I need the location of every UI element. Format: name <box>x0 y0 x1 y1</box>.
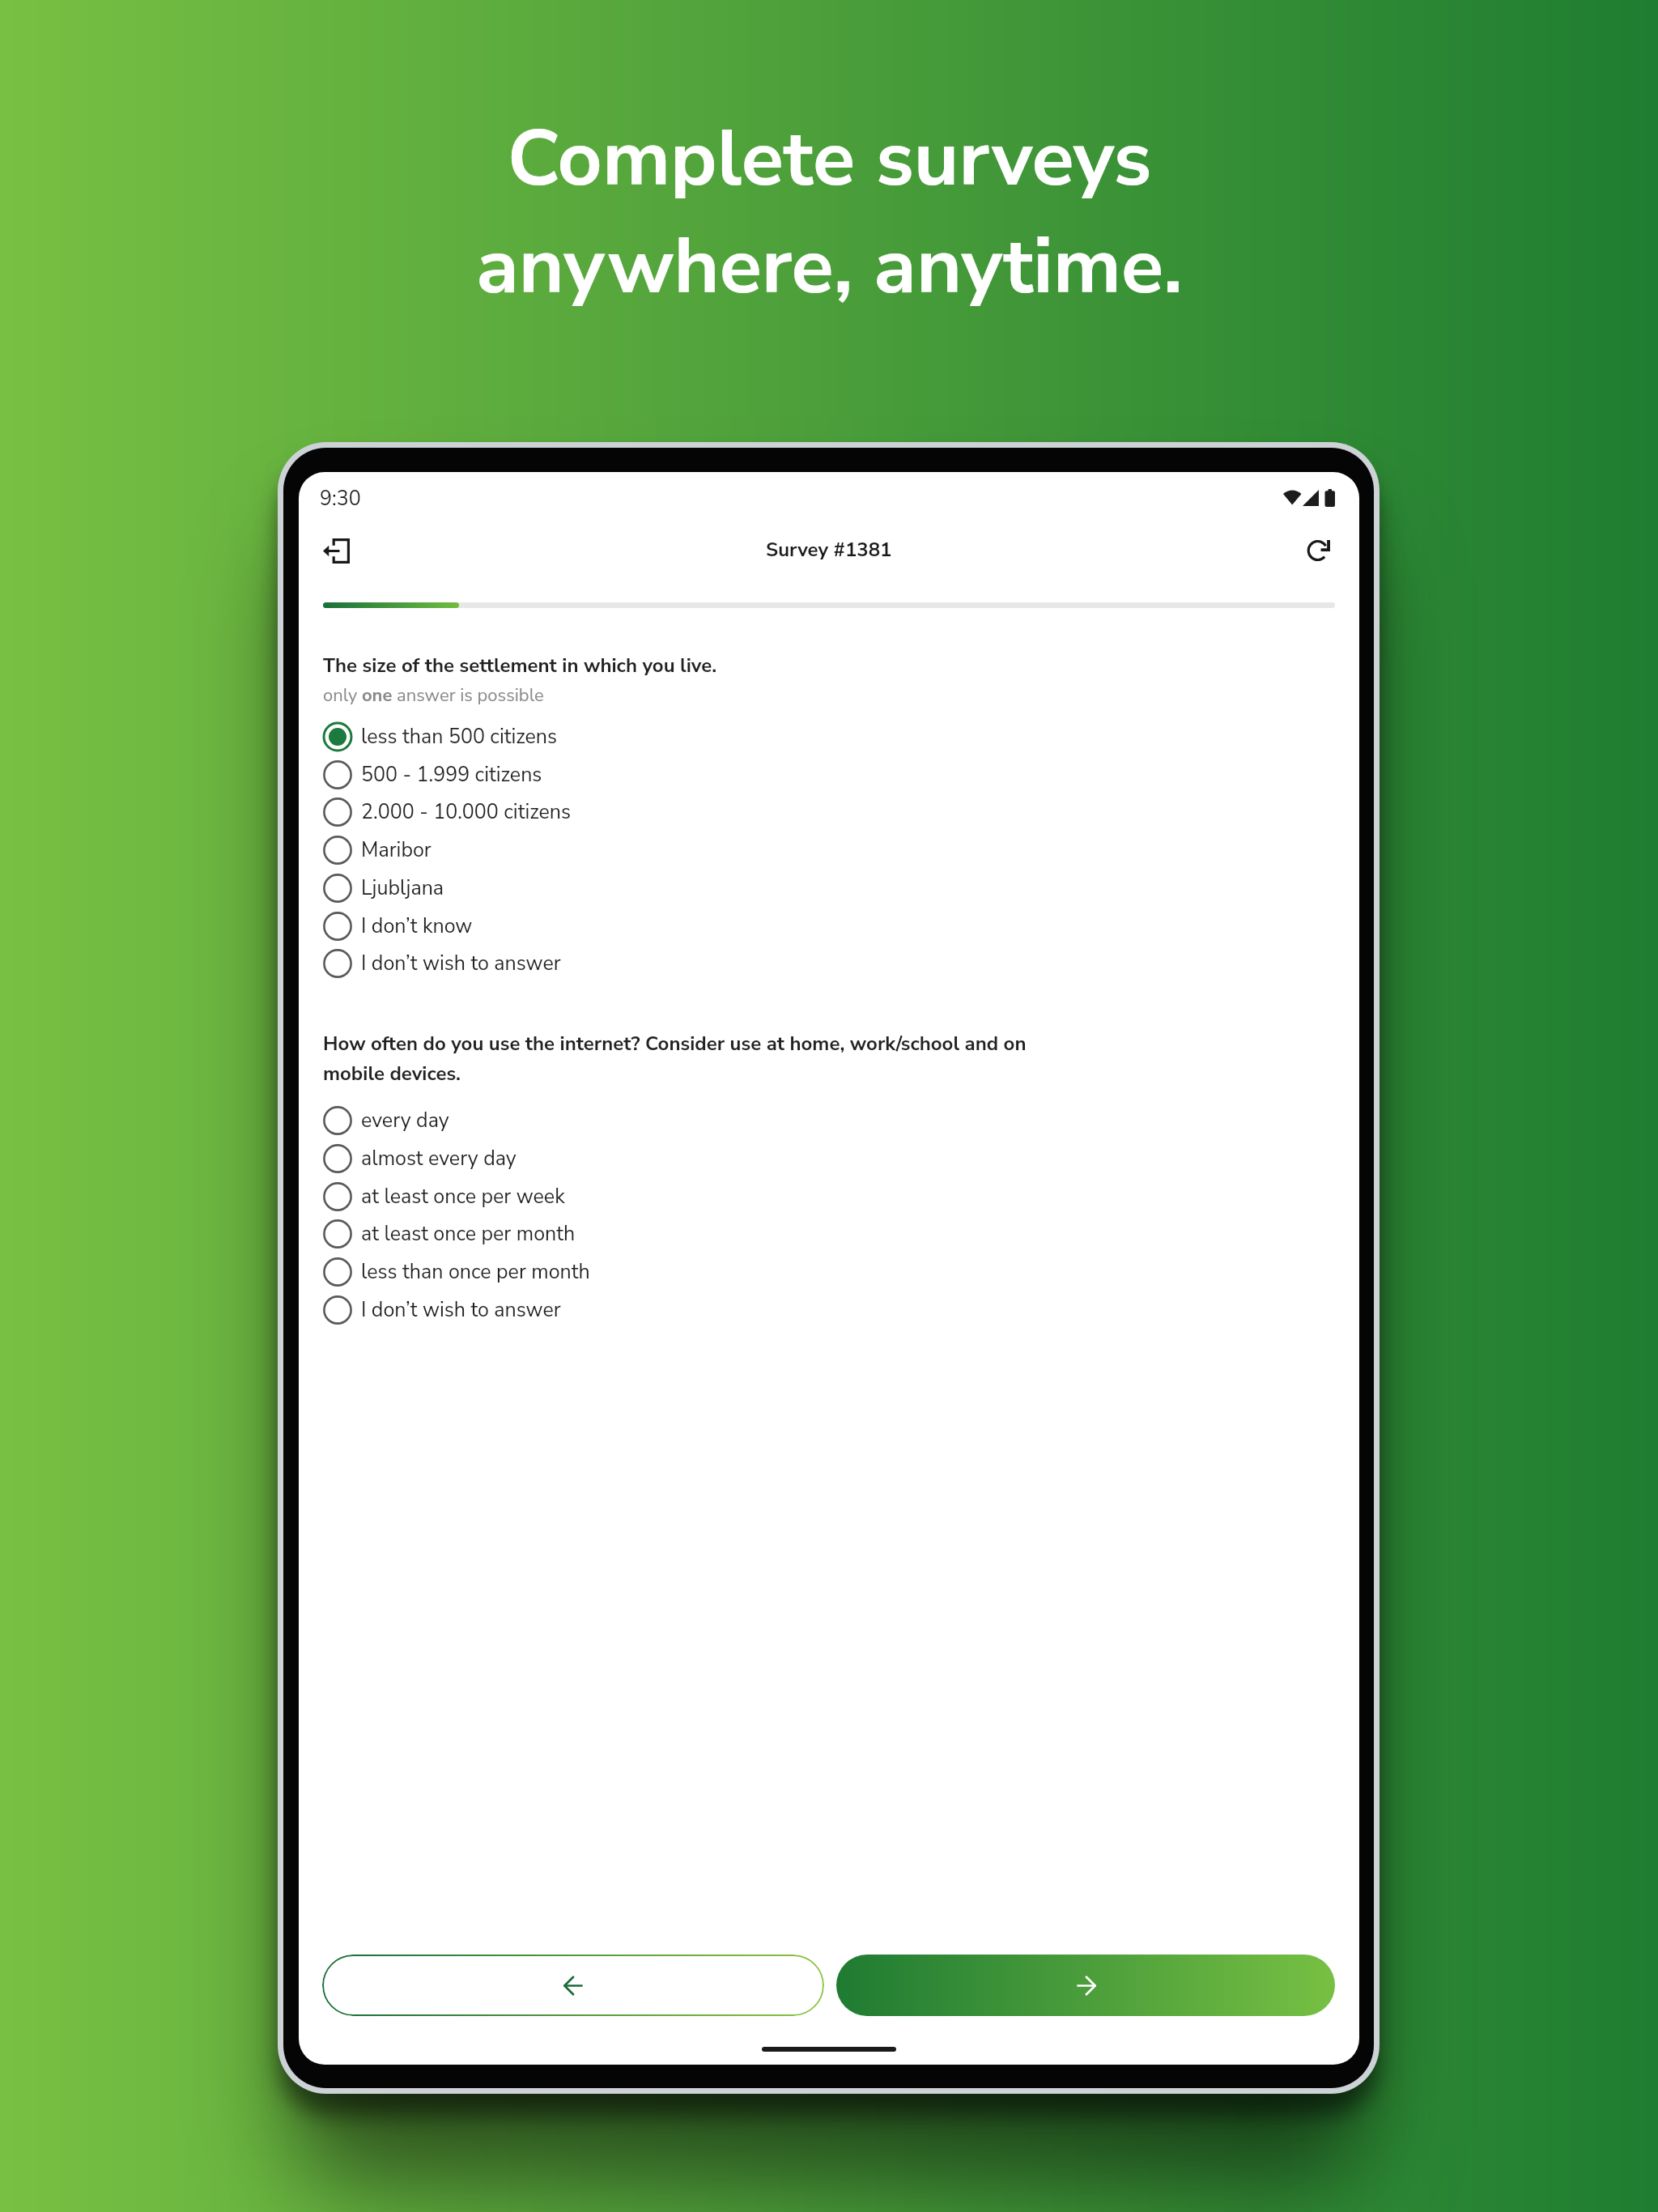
button[interactable]: Maribor <box>323 833 890 867</box>
button[interactable]: Exit survey <box>312 526 360 575</box>
button[interactable]: 500 - 1.999 citizens <box>323 758 890 792</box>
button[interactable]: 2.000 - 10.000 citizens <box>323 795 890 829</box>
button[interactable]: at least once per month <box>323 1217 890 1251</box>
staticText: only one answer is possible <box>323 683 544 708</box>
staticText: 500 - 1.999 citizens <box>361 761 542 789</box>
staticText: I don’t wish to answer <box>361 1296 561 1324</box>
button[interactable]: I don’t know <box>323 909 890 943</box>
button[interactable]: Previous question <box>322 1955 824 2016</box>
staticText: less than 500 citizens <box>361 723 558 751</box>
staticText: I don’t know <box>361 912 473 940</box>
staticText: at least once per week <box>361 1183 565 1210</box>
staticText: I don’t wish to answer <box>361 950 561 977</box>
button[interactable]: Ljubljana <box>323 871 890 905</box>
button[interactable]: less than once per month <box>323 1255 890 1289</box>
staticText: Survey #1381 <box>766 537 892 564</box>
staticText: Maribor <box>361 836 432 864</box>
staticText: almost every day <box>361 1145 517 1172</box>
button[interactable]: every day <box>323 1104 890 1138</box>
staticText: 9:30 <box>320 485 361 513</box>
staticText: The size of the settlement in which you … <box>323 653 717 679</box>
button[interactable]: I don’t wish to answer <box>323 946 890 981</box>
button[interactable]: Next question <box>836 1955 1335 2016</box>
staticText: less than once per month <box>361 1258 590 1286</box>
button[interactable]: at least once per week <box>323 1180 890 1214</box>
button[interactable]: I don’t wish to answer <box>323 1293 890 1327</box>
staticText: Ljubljana <box>361 874 444 902</box>
staticText: How often do you use the internet? Consi… <box>323 1031 1044 1087</box>
staticText: every day <box>361 1107 449 1134</box>
staticText: at least once per month <box>361 1220 576 1248</box>
staticText: Complete surveys anywhere, anytime. <box>476 106 1183 319</box>
button[interactable]: Refresh survey <box>1297 528 1342 573</box>
button[interactable]: less than 500 citizens <box>323 720 890 754</box>
staticText: 2.000 - 10.000 citizens <box>361 798 572 826</box>
button[interactable]: almost every day <box>323 1142 890 1176</box>
